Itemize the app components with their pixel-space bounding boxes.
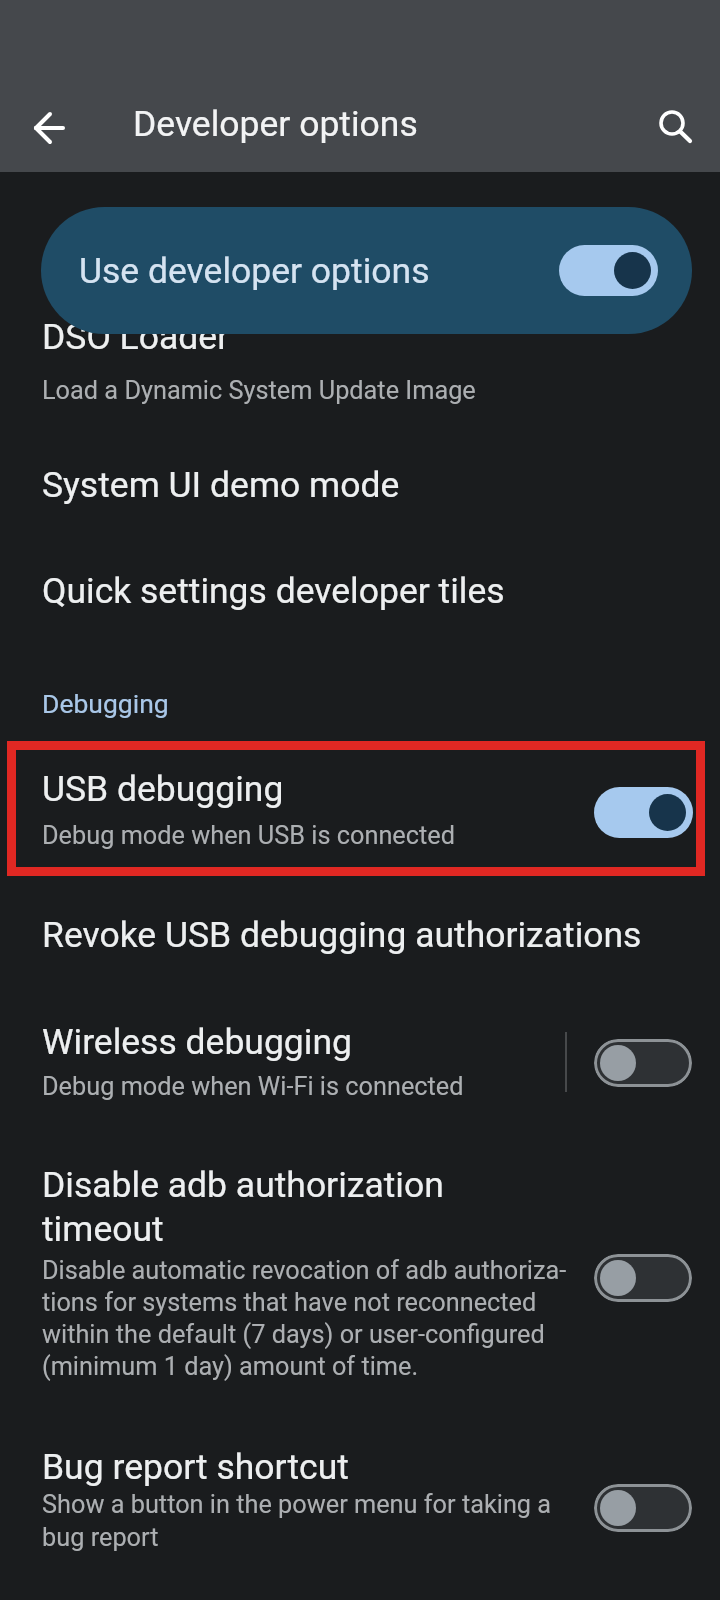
staticText: System UI demo mode [42, 464, 400, 506]
button[interactable]: Quick settings developer tiles [0, 540, 720, 647]
staticText: Debugging [42, 688, 169, 719]
button[interactable] [594, 1484, 692, 1532]
staticText: Use developer options [79, 250, 430, 292]
button[interactable]: USB debugging [0, 741, 720, 877]
staticText: Revoke USB debugging authorizations [42, 914, 642, 956]
staticText: Load a Dynamic System Update Image [42, 376, 476, 406]
button[interactable]: Wireless debugging [0, 1000, 720, 1112]
button[interactable] [594, 1039, 692, 1087]
button[interactable] [14, 94, 82, 162]
staticText: Disable automatic revocation of adb auth… [42, 1256, 567, 1381]
staticText: Quick settings developer tiles [42, 570, 505, 612]
staticText: DSO Loader [42, 316, 230, 358]
button[interactable] [642, 94, 710, 162]
button[interactable]: DSO Loader [0, 300, 720, 412]
staticText: Debug mode when Wi-Fi is connected [42, 1072, 464, 1102]
staticText: Developer options [133, 103, 418, 145]
button[interactable]: Revoke USB debugging authorizations [0, 882, 720, 990]
staticText: Disable adb authorization timeout [42, 1164, 444, 1250]
staticText: USB debugging [42, 768, 284, 810]
staticText: Bug report shortcut [42, 1446, 349, 1488]
button[interactable]: System UI demo mode [0, 433, 720, 540]
staticText: Wireless debugging [42, 1021, 352, 1063]
button[interactable]: Use developer options [41, 207, 692, 334]
button[interactable]: Bug report shortcut [0, 1430, 720, 1580]
button[interactable] [594, 787, 693, 838]
button[interactable] [594, 1254, 692, 1302]
button[interactable]: Disable adb authorization timeout [0, 1148, 720, 1388]
staticText: Debug mode when USB is connected [42, 821, 455, 851]
staticText: Show a button in the power menu for taki… [42, 1490, 552, 1552]
